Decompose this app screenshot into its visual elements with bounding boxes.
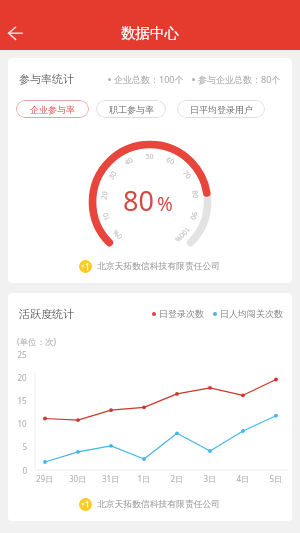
staticText: 1 <box>85 499 90 511</box>
staticText: 1 <box>85 261 90 273</box>
staticText: 日平均登录用户 <box>190 104 253 115</box>
staticText: 参与企业总数：80个 <box>198 73 281 85</box>
staticText: 活跃度统计 <box>19 307 74 321</box>
staticText: 企业参与率 <box>30 104 75 115</box>
staticText: 参与率统计 <box>19 72 74 86</box>
button[interactable]: 职工参与率 <box>96 100 166 118</box>
staticText: 北京天拓数信科技有限责任公司 <box>97 261 221 272</box>
staticText: 企业总数：100个 <box>114 73 184 85</box>
staticText: % <box>157 191 173 217</box>
staticText: 日登录次数 <box>159 308 204 319</box>
staticText: 80 <box>123 182 154 219</box>
staticText: 数据中心 <box>121 24 179 42</box>
staticText: 北京天拓数信科技有限责任公司 <box>97 499 221 510</box>
button[interactable]: Back <box>0 12 31 38</box>
staticText: 日人均闯关次数 <box>220 308 283 319</box>
staticText: 职工参与率 <box>109 104 154 115</box>
button[interactable]: 日平均登录用户 <box>177 100 265 118</box>
button[interactable]: 企业参与率 <box>16 100 89 118</box>
